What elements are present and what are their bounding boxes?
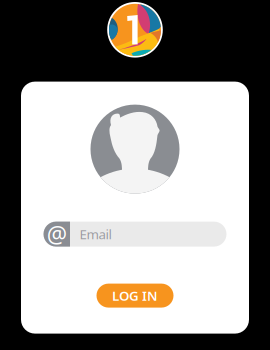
staticText: @ [47, 219, 67, 249]
button[interactable]: LOG IN [96, 284, 173, 308]
staticText: Email [79, 225, 111, 243]
staticText: LOG IN [112, 287, 158, 304]
